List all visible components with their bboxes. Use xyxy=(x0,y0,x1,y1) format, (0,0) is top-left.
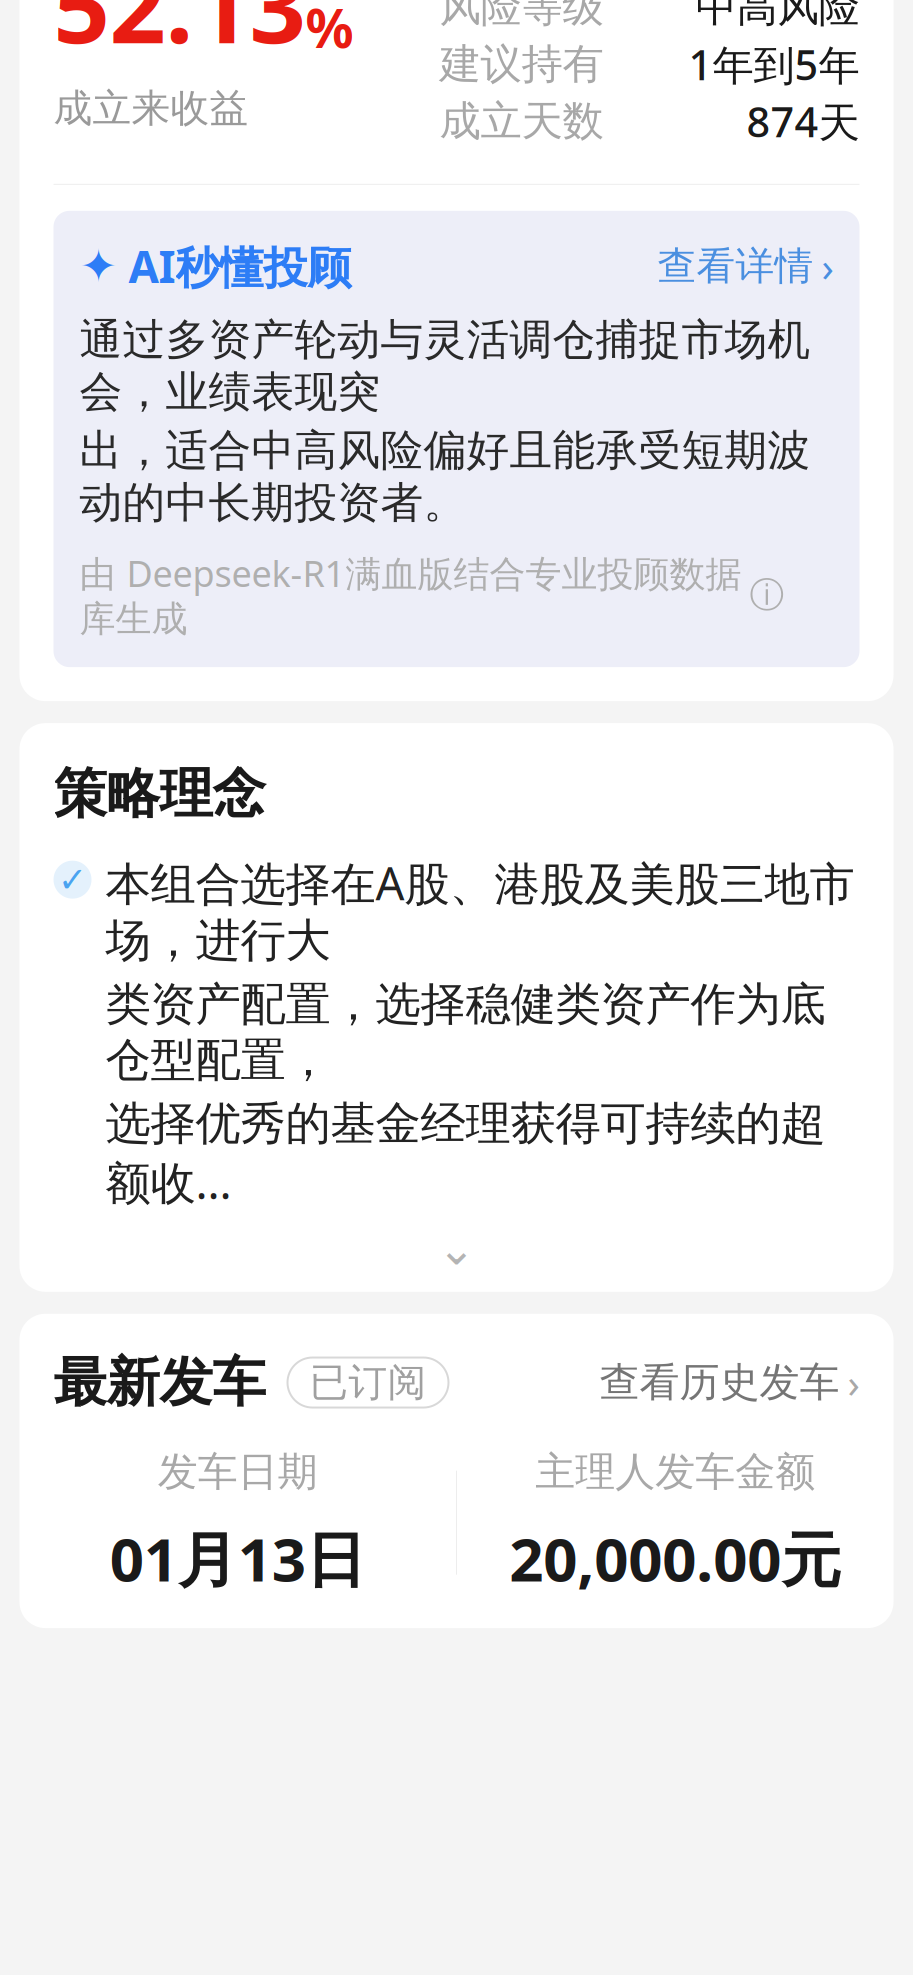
button[interactable]: Expand xyxy=(53,1226,859,1272)
staticText: 最新发车 xyxy=(53,1350,265,1415)
staticText: 20,000.00元 xyxy=(509,1518,841,1598)
staticText: ⓘ xyxy=(749,574,784,616)
staticText: 成立天数 xyxy=(439,96,603,147)
staticText: 查看详情 xyxy=(657,242,813,290)
staticText: › xyxy=(821,240,833,293)
staticText: 成立来收益 xyxy=(53,85,248,132)
staticText: 策略理念 xyxy=(53,761,265,827)
staticText: 52.13 xyxy=(53,0,305,71)
staticText: 建议持有 xyxy=(439,39,603,90)
staticText: › xyxy=(847,1356,859,1409)
staticText: 本组合选择在A股、港股及美股三地市场，进行大 xyxy=(105,853,854,968)
staticText: 874天 xyxy=(746,94,859,149)
staticText: 通过多资产轮动与灵活调仓捕捉市场机会，业绩表现突 xyxy=(79,313,810,418)
staticText: 1年到5年 xyxy=(688,37,859,92)
staticText: 发车日期 xyxy=(158,1447,318,1496)
staticText: AI秒懂投顾 xyxy=(117,237,351,295)
staticText: 选择优秀的基金经理获得可持续的超额收... xyxy=(105,1096,825,1212)
staticText: ✦ xyxy=(79,240,117,292)
staticText: 主理人发车金额 xyxy=(535,1447,815,1496)
staticText: 出，适合中高风险偏好且能承受短期波动的中长期投资者。 xyxy=(79,424,810,529)
staticText: 查看历史发车 xyxy=(599,1358,839,1407)
staticText: 类资产配置，选择稳健类资产作为底仓型配置， xyxy=(105,976,825,1088)
staticText: 中高风险 xyxy=(695,0,859,33)
staticText: ⌄ xyxy=(437,1223,475,1274)
staticText: % xyxy=(305,0,353,63)
staticText: 由 Deepseek-R1满血版结合专业投顾数据库生成 xyxy=(79,549,741,641)
staticText: 风险等级 xyxy=(439,0,603,33)
button[interactable]: 查看历史发车 xyxy=(599,1356,859,1409)
staticText: ✓ xyxy=(58,860,87,899)
staticText: 已订阅 xyxy=(309,1359,426,1406)
button[interactable]: 查看详情 xyxy=(657,240,833,293)
staticText: 01月13日 xyxy=(110,1518,366,1598)
